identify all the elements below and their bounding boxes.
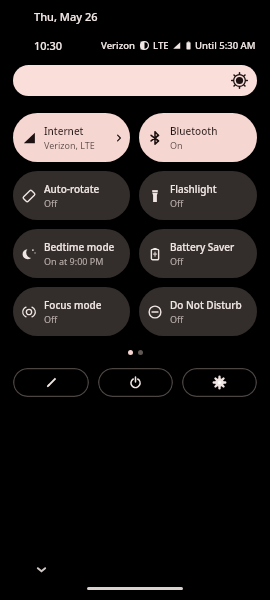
button[interactable]: Collapse (29, 557, 53, 581)
staticText: 10:30 (34, 38, 63, 53)
staticText: Internet (44, 124, 84, 138)
button[interactable]: Internet (13, 113, 130, 162)
staticText: Bluetooth (170, 124, 218, 138)
button[interactable]: Auto-rotate (13, 171, 130, 220)
staticText: Off (170, 197, 184, 209)
staticText: Bedtime mode (44, 240, 115, 254)
button[interactable]: Bedtime mode (13, 229, 130, 278)
staticText: Off (44, 313, 58, 325)
button[interactable]: Bluetooth (139, 113, 257, 162)
staticText: Until 5:30 AM (195, 39, 256, 52)
staticText: Verizon (101, 39, 135, 52)
button[interactable]: Battery Saver (139, 229, 257, 278)
button[interactable]: Settings (182, 368, 257, 397)
staticText: On (170, 139, 183, 151)
button[interactable]: Do Not Disturb (139, 287, 257, 336)
staticText: LTE (153, 39, 169, 52)
button[interactable]: Edit tiles (13, 368, 89, 397)
staticText: Flashlight (170, 182, 217, 196)
staticText: Do Not Disturb (170, 298, 242, 312)
staticText: On at 9:00 PM (44, 255, 104, 267)
staticText: Verizon, LTE (44, 139, 95, 151)
staticText: Thu, May 26 (34, 9, 98, 24)
staticText: Auto-rotate (44, 182, 100, 196)
button[interactable]: Brightness (13, 65, 257, 96)
staticText: Off (170, 313, 184, 325)
staticText: Off (170, 255, 184, 267)
staticText: Battery Saver (170, 240, 235, 254)
staticText: Focus mode (44, 298, 102, 312)
button[interactable]: Power (98, 368, 173, 397)
button[interactable]: Focus mode (13, 287, 130, 336)
staticText: Off (44, 197, 58, 209)
button[interactable]: Flashlight (139, 171, 257, 220)
